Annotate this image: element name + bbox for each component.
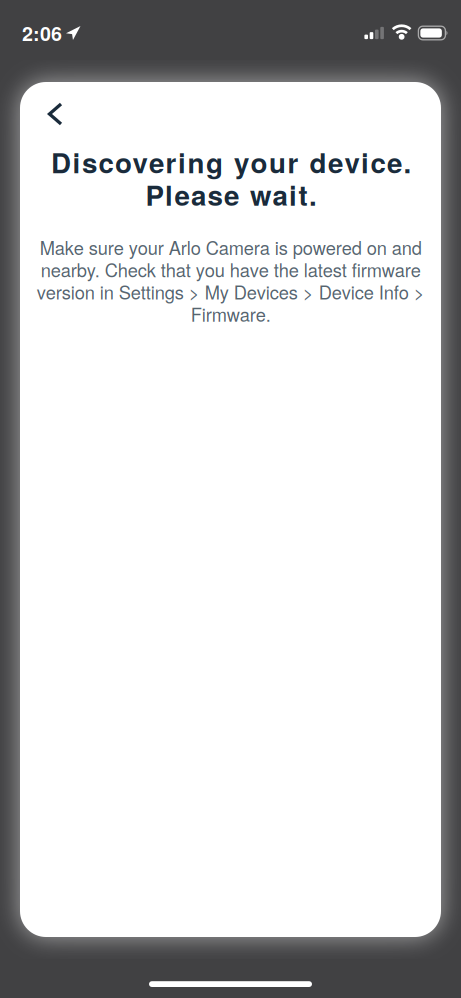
staticText: 2:06: [22, 19, 62, 47]
staticText: Discovering your device. Please wait.: [50, 142, 411, 214]
staticText: Make sure your Arlo Camera is powered on…: [36, 234, 424, 327]
button[interactable]: Back: [20, 82, 61, 124]
